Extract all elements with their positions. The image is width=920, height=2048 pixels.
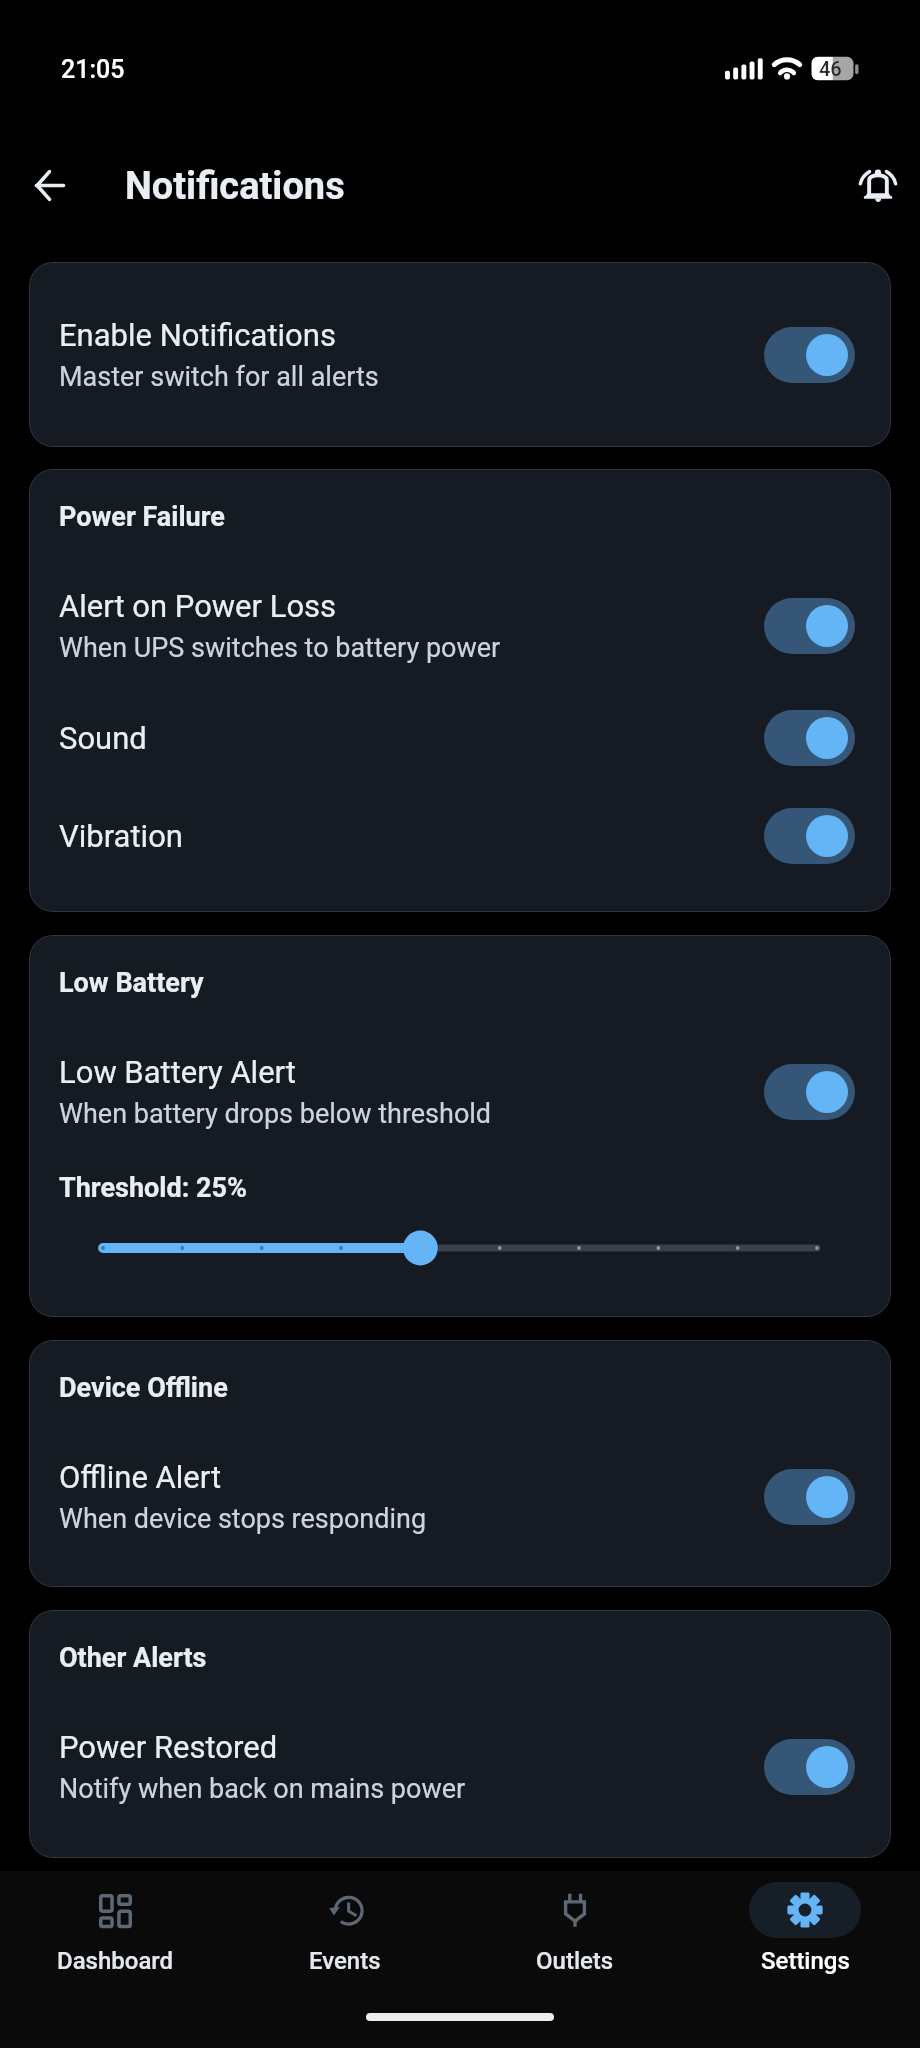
- staticText: Notify when back on mains power: [59, 1773, 466, 1805]
- button[interactable]: Events: [230, 1871, 460, 1975]
- staticText: 21:05: [61, 55, 125, 84]
- staticText: Other Alerts: [59, 1642, 207, 1674]
- staticText: Alert on Power Loss: [59, 588, 337, 624]
- staticText: When device stops responding: [59, 1503, 427, 1535]
- button[interactable]: Toggle: [764, 327, 855, 383]
- staticText: Settings: [761, 1947, 850, 1975]
- button[interactable]: Threshold slider: [59, 1227, 861, 1269]
- button[interactable]: Back: [21, 157, 77, 213]
- staticText: Offline Alert: [59, 1459, 222, 1495]
- button[interactable]: Toggle: [764, 808, 855, 864]
- staticText: Device Offline: [59, 1372, 228, 1404]
- staticText: Low Battery: [59, 967, 204, 999]
- staticText: Sound: [59, 720, 764, 756]
- staticText: Power Failure: [59, 501, 225, 533]
- button[interactable]: Dashboard: [0, 1871, 230, 1975]
- staticText: Enable Notifications: [59, 317, 336, 353]
- staticText: Master switch for all alerts: [59, 361, 379, 393]
- staticText: Low Battery Alert: [59, 1054, 296, 1090]
- staticText: Vibration: [59, 818, 764, 854]
- button[interactable]: Outlets: [460, 1871, 690, 1975]
- button[interactable]: Toggle: [764, 1064, 855, 1120]
- staticText: Power Restored: [59, 1729, 278, 1765]
- staticText: When battery drops below threshold: [59, 1098, 492, 1130]
- button[interactable]: Notification settings: [850, 157, 906, 213]
- button[interactable]: Toggle: [764, 1739, 855, 1795]
- staticText: When UPS switches to battery power: [59, 632, 501, 664]
- button[interactable]: Toggle: [764, 710, 855, 766]
- staticText: Threshold: 25%: [59, 1172, 247, 1204]
- staticText: Notifications: [125, 164, 345, 209]
- staticText: Dashboard: [57, 1947, 174, 1975]
- button[interactable]: Settings: [690, 1871, 920, 1975]
- staticText: Events: [309, 1947, 381, 1975]
- staticText: 46: [819, 57, 842, 80]
- button[interactable]: Toggle: [764, 1469, 855, 1525]
- staticText: Outlets: [536, 1947, 614, 1975]
- button[interactable]: Toggle: [764, 598, 855, 654]
